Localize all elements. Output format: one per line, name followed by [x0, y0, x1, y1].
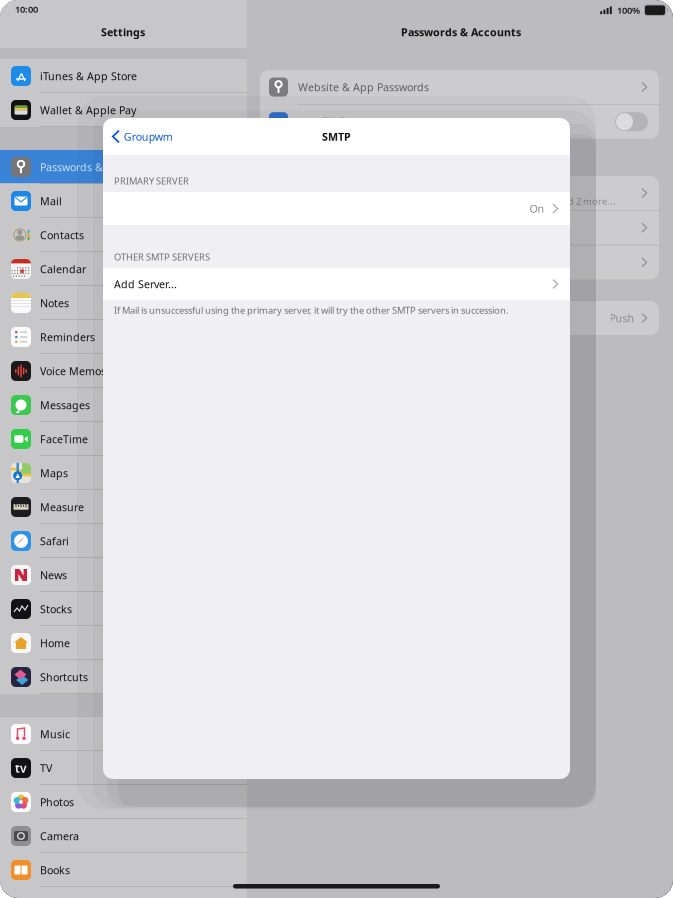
staticText: Notes	[40, 296, 69, 310]
button[interactable]: News	[0, 558, 247, 592]
staticText: 10:00	[15, 3, 38, 15]
staticText: TV	[40, 761, 52, 775]
button[interactable]: Add Server...	[103, 268, 570, 300]
button[interactable]: Measure	[0, 490, 247, 524]
staticText: On	[529, 201, 544, 216]
staticText: Stocks	[40, 602, 72, 616]
button[interactable]: Music	[0, 717, 247, 751]
button[interactable]: tv	[0, 751, 247, 785]
staticText: Fetch New Data	[279, 311, 359, 325]
button[interactable]: iTunes & App Store	[0, 59, 247, 93]
button[interactable]: iCloud	[260, 176, 659, 210]
button[interactable]: Mail	[0, 184, 247, 218]
button[interactable]: Contacts	[0, 218, 247, 252]
staticText: Gmail	[279, 213, 309, 228]
staticText: Add Account	[279, 255, 344, 269]
staticText: Reminders	[40, 330, 95, 344]
staticText: Add Server...	[114, 277, 177, 291]
staticText: Messages	[40, 398, 90, 412]
staticText: 100%	[617, 4, 640, 16]
staticText: Wallet & Apple Pay	[40, 103, 136, 117]
button[interactable]: Website & App Passwords	[260, 70, 659, 104]
staticText: Photos	[40, 795, 74, 809]
button[interactable]: Books	[0, 853, 247, 887]
staticText: Books	[40, 863, 70, 877]
staticText: Calendar	[40, 262, 86, 276]
button[interactable]: Messages	[0, 388, 247, 422]
staticText: Measure	[40, 500, 84, 514]
button[interactable]: On	[103, 192, 570, 225]
button[interactable]: Camera	[0, 819, 247, 853]
staticText: Groupwm	[124, 129, 173, 144]
staticText: Website & App Passwords	[298, 80, 429, 94]
staticText: tv	[15, 760, 27, 776]
button[interactable]: Notes	[0, 286, 247, 320]
staticText: iCloud	[279, 179, 312, 193]
staticText: Passwords & Accounts	[401, 25, 521, 39]
staticText: Home	[40, 636, 70, 650]
button[interactable]: Calendar	[0, 252, 247, 286]
staticText: Mail	[40, 194, 62, 208]
button[interactable]: Home	[0, 626, 247, 660]
staticText: FaceTime	[40, 432, 88, 446]
button[interactable]: Add Account	[260, 245, 659, 279]
staticText: Safari	[40, 534, 69, 548]
button[interactable]: AutoFill Passwords	[260, 105, 659, 139]
staticText: SMTP	[322, 129, 351, 144]
staticText: If Mail is unsuccessful using the primar…	[114, 304, 509, 316]
staticText: Shortcuts	[40, 670, 88, 684]
button[interactable]: Groupwm	[103, 124, 173, 149]
staticText: PRIMARY SERVER	[114, 175, 189, 187]
staticText: Settings	[101, 25, 145, 39]
staticText: AutoFill Passwords	[298, 115, 392, 129]
staticText: OTHER SMTP SERVERS	[114, 251, 210, 263]
staticText: Camera	[40, 829, 79, 843]
staticText: Contacts	[40, 228, 84, 242]
button[interactable]: Maps	[0, 456, 247, 490]
button[interactable]: Photos	[0, 785, 247, 819]
staticText: Passwords & Accounts	[40, 160, 152, 174]
staticText: Music	[40, 727, 70, 741]
button[interactable]: Gmail	[260, 211, 659, 245]
staticText: Maps	[40, 466, 68, 480]
button[interactable]: Reminders	[0, 320, 247, 354]
staticText: News	[40, 568, 67, 582]
button[interactable]: Safari	[0, 524, 247, 558]
button[interactable]: Voice Memos	[0, 354, 247, 388]
button[interactable]: Stocks	[0, 592, 247, 626]
staticText: iCloud Drive, Mail, Contacts, Calendars,…	[279, 195, 616, 207]
staticText: Voice Memos	[40, 364, 106, 378]
staticText: Push	[609, 311, 634, 325]
button[interactable]: Passwords & Accounts	[0, 150, 247, 184]
button[interactable]: Fetch New Data	[260, 301, 659, 335]
button[interactable]: Wallet & Apple Pay	[0, 93, 247, 127]
staticText: iTunes & App Store	[40, 69, 137, 83]
button[interactable]: FaceTime	[0, 422, 247, 456]
button[interactable]: Shortcuts	[0, 660, 247, 694]
